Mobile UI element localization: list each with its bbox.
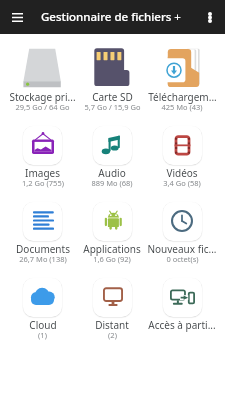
button[interactable]: Accès à parti... xyxy=(147,273,217,349)
button[interactable]: Audio xyxy=(77,121,147,197)
button[interactable]: Téléchargem... xyxy=(147,45,217,121)
staticText: 26,7 Mo (138) xyxy=(19,254,67,264)
staticText: Applications xyxy=(83,242,141,256)
staticText: Audio xyxy=(98,166,126,180)
staticText: 3,4 Go (58) xyxy=(163,178,201,188)
staticText: 5,7 Go / 15,9 Go xyxy=(84,102,141,112)
button[interactable]: Vidéos xyxy=(147,121,217,197)
button[interactable]: Nouveaux fic... xyxy=(147,197,217,273)
staticText: Stockage pri... xyxy=(9,90,76,104)
button[interactable]: Carte SD xyxy=(77,45,147,121)
staticText: Vidéos xyxy=(166,166,198,180)
staticText: Documents xyxy=(16,242,70,256)
staticText: 889 Mo (68) xyxy=(91,178,133,188)
staticText: Distant xyxy=(95,318,129,332)
staticText: Carte SD xyxy=(92,90,133,104)
staticText: Images xyxy=(25,166,60,180)
button[interactable]: Images xyxy=(8,121,77,197)
button[interactable]: More options xyxy=(198,5,222,29)
button[interactable]: Cloud xyxy=(8,273,77,349)
staticText: (2) xyxy=(108,330,117,340)
staticText: Accès à parti... xyxy=(148,318,216,332)
button[interactable]: Applications xyxy=(77,197,147,273)
button[interactable]: Distant xyxy=(77,273,147,349)
staticText: Cloud xyxy=(29,318,57,332)
staticText: 425 Mo (43) xyxy=(161,102,203,112)
button[interactable]: Documents xyxy=(8,197,77,273)
staticText: 1,2 Go (755) xyxy=(22,178,64,188)
staticText: Gestionnaire de fichiers + xyxy=(41,9,181,25)
staticText: (1) xyxy=(38,330,47,340)
staticText: Nouveaux fic... xyxy=(147,242,217,256)
staticText: 29,5 Go / 64 Go xyxy=(15,102,70,112)
staticText: Téléchargem... xyxy=(148,90,217,104)
button[interactable]: Menu xyxy=(5,5,29,29)
staticText: 1,6 Go (92) xyxy=(93,254,131,264)
button[interactable]: Stockage pri... xyxy=(8,45,77,121)
staticText: 0 octet(s) xyxy=(166,254,199,264)
